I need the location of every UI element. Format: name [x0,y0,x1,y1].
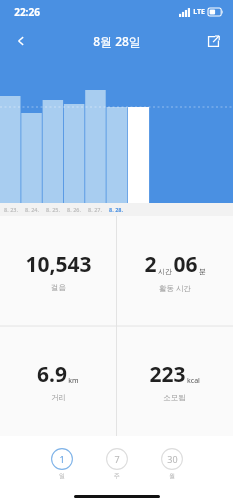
staticText: 6.9 [37,360,67,389]
staticText: 분 [199,267,206,276]
staticText: 8. 26. [67,206,81,213]
staticText: 10,543 [25,250,92,279]
button[interactable]: Share [199,27,227,55]
staticText: 30 [167,453,178,465]
button[interactable]: 223 [116,326,233,436]
button[interactable]: 10,543 [0,216,116,326]
staticText: LTE [193,7,205,17]
button[interactable]: 30 [161,448,183,480]
staticText: 8. 23. [4,206,18,213]
staticText: kcal [187,376,200,386]
staticText: 활동 시간 [159,283,191,293]
staticText: 주 [114,472,120,480]
staticText: 시간 [158,267,172,276]
staticText: 8월 28일 [93,33,141,49]
button[interactable]: 2 [116,216,233,326]
button[interactable]: 7 [106,448,128,480]
staticText: 1 [59,453,65,465]
staticText: 8. 25. [46,206,60,213]
staticText: 걸음 [51,283,66,292]
staticText: 06 [173,250,198,279]
staticText: 소모됨 [163,393,186,402]
button[interactable]: Back [6,26,36,56]
staticText: 거리 [51,393,66,402]
staticText: 223 [149,360,186,389]
button[interactable]: 1 [51,448,73,480]
staticText: 2 [144,250,157,279]
staticText: km [68,376,79,386]
button[interactable]: 6.9 [0,326,116,436]
staticText: 일 [59,472,65,480]
staticText: 8. 27. [88,206,102,213]
staticText: 8. 28. [109,206,123,213]
staticText: 8. 24. [25,206,39,213]
staticText: 22:26 [14,5,40,19]
staticText: 7 [114,453,120,465]
staticText: 월 [169,472,175,480]
